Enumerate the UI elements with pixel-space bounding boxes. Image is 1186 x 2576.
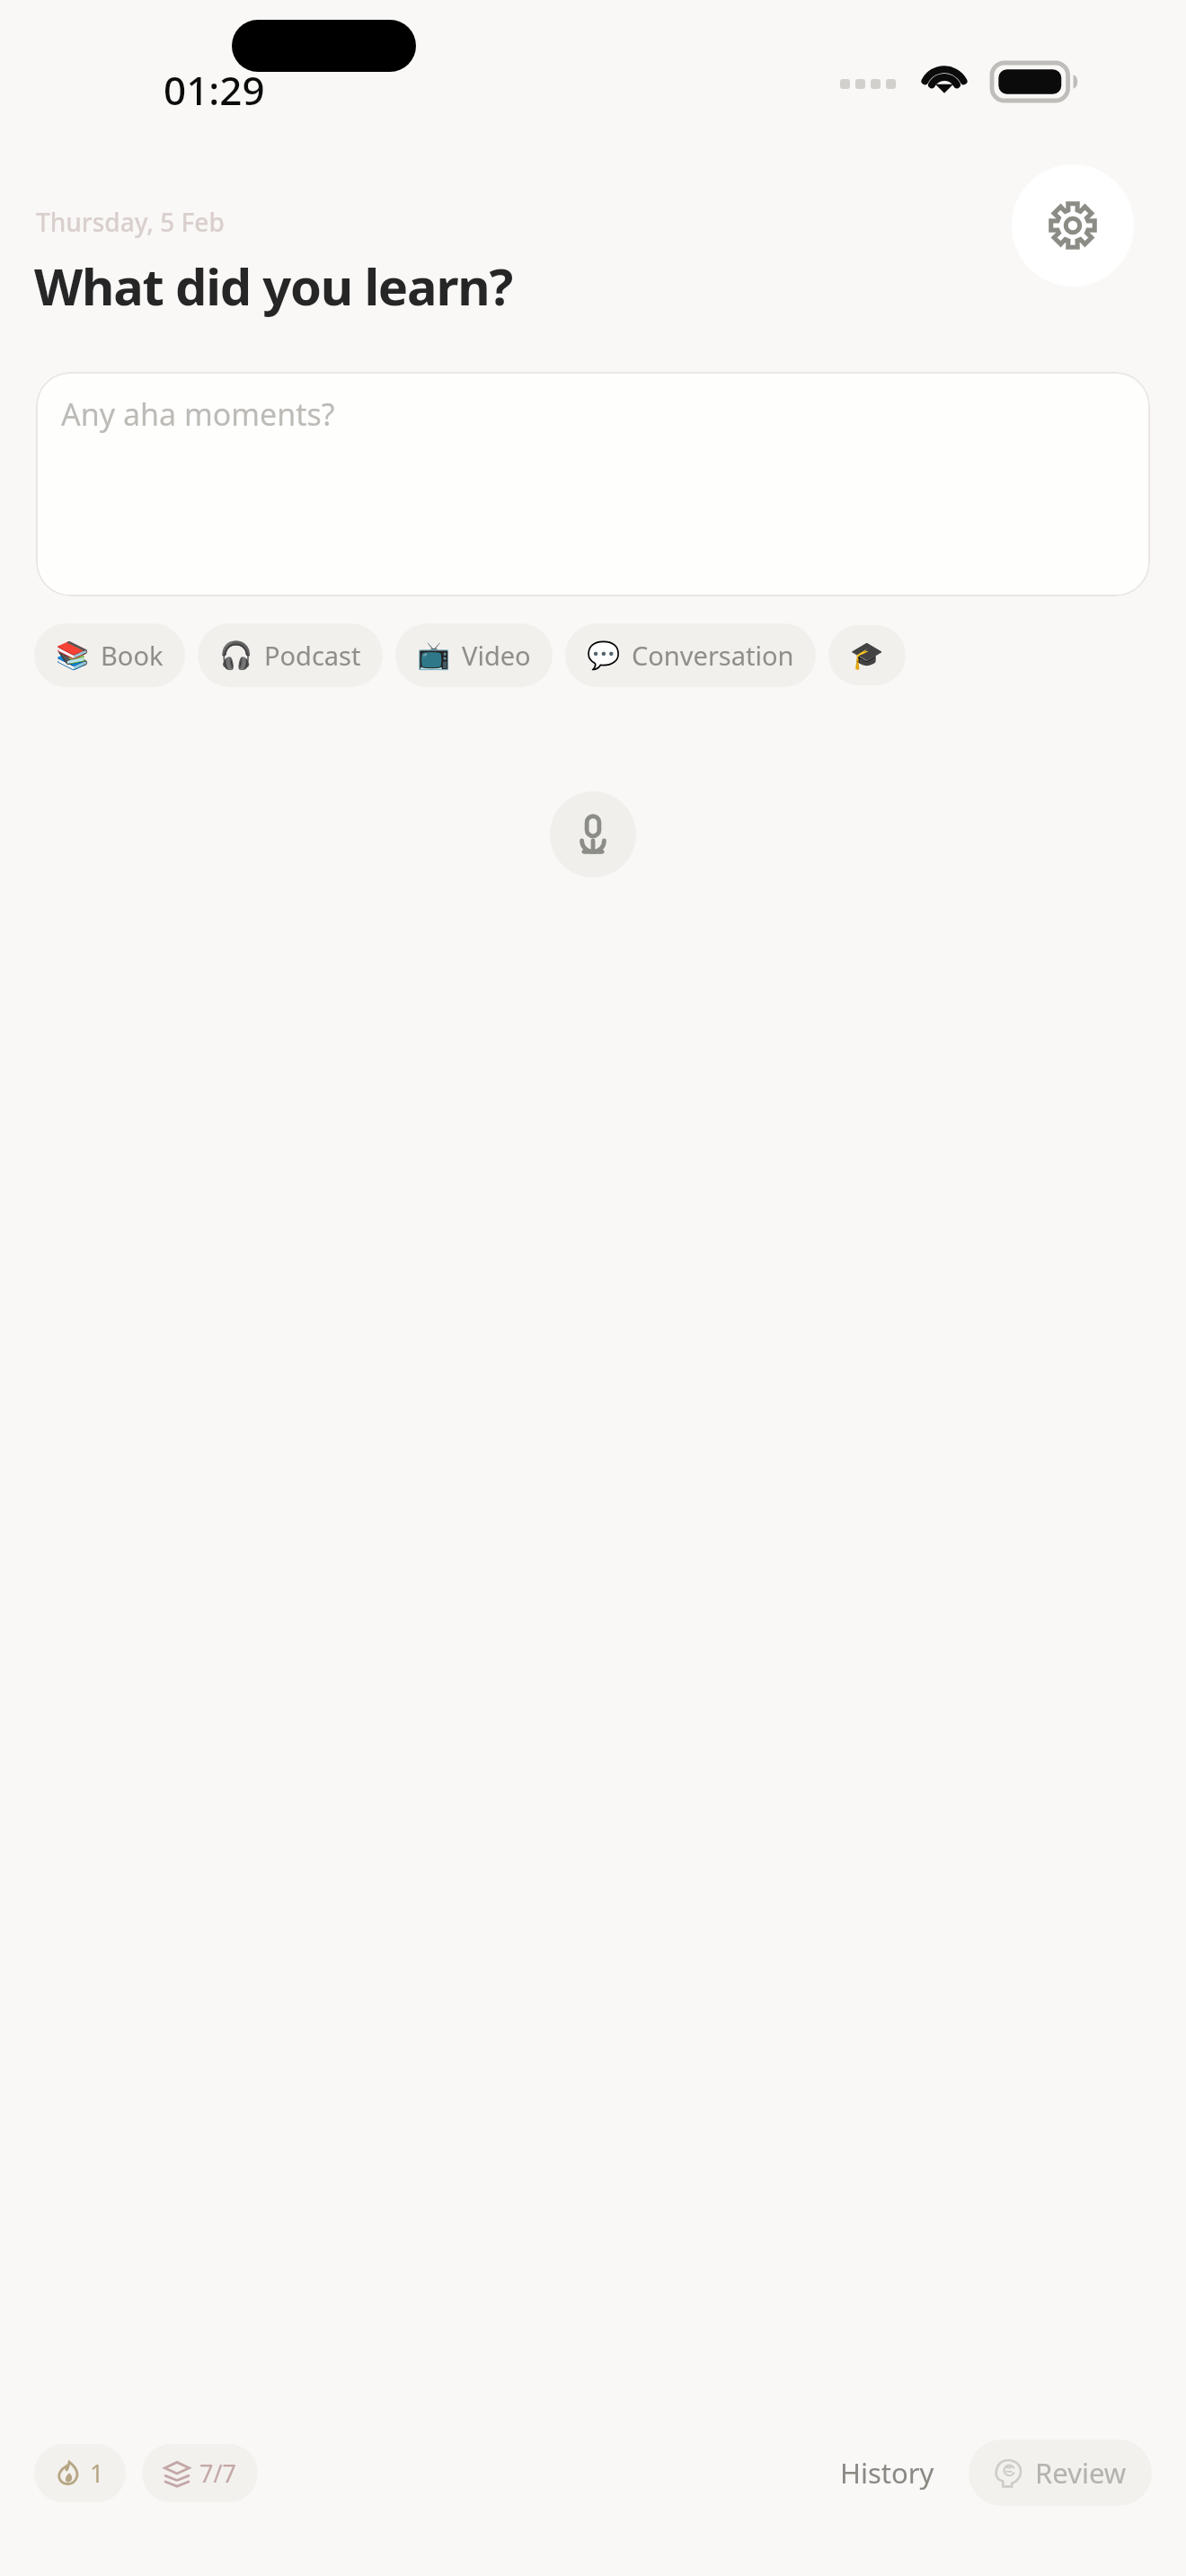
staticText: 📚	[56, 640, 90, 671]
button[interactable]: 1	[34, 2444, 126, 2502]
button[interactable]: Record voice note	[550, 791, 636, 878]
staticText: Thursday, 5 Feb	[36, 205, 225, 239]
staticText: Book	[101, 638, 164, 673]
staticText: 🎧	[219, 640, 253, 671]
button[interactable]: Review	[969, 2439, 1152, 2506]
staticText: Any aha moments?	[61, 393, 335, 435]
button[interactable]: Any aha moments?	[36, 372, 1150, 596]
button[interactable]: History	[826, 2441, 949, 2504]
button[interactable]: 🎧	[198, 623, 383, 687]
button[interactable]: 📚	[34, 623, 185, 687]
button[interactable]: 💬	[565, 623, 816, 687]
staticText: Video	[462, 638, 531, 673]
staticText: 📺	[417, 640, 451, 671]
staticText: 🎓	[850, 640, 884, 671]
button[interactable]: 🎓	[828, 625, 906, 685]
staticText: 7/7	[199, 2457, 236, 2490]
staticText: Conversation	[632, 638, 794, 673]
staticText: History	[840, 2454, 934, 2492]
button[interactable]: Settings	[1012, 164, 1134, 287]
button[interactable]: 📺	[395, 623, 553, 687]
button[interactable]: 7/7	[142, 2444, 258, 2502]
staticText: 1	[90, 2457, 104, 2490]
staticText: 💬	[587, 640, 621, 671]
staticText: Podcast	[264, 638, 361, 673]
staticText: 01:29	[164, 63, 265, 117]
staticText: What did you learn?	[34, 251, 512, 320]
staticText: Review	[1035, 2454, 1127, 2492]
